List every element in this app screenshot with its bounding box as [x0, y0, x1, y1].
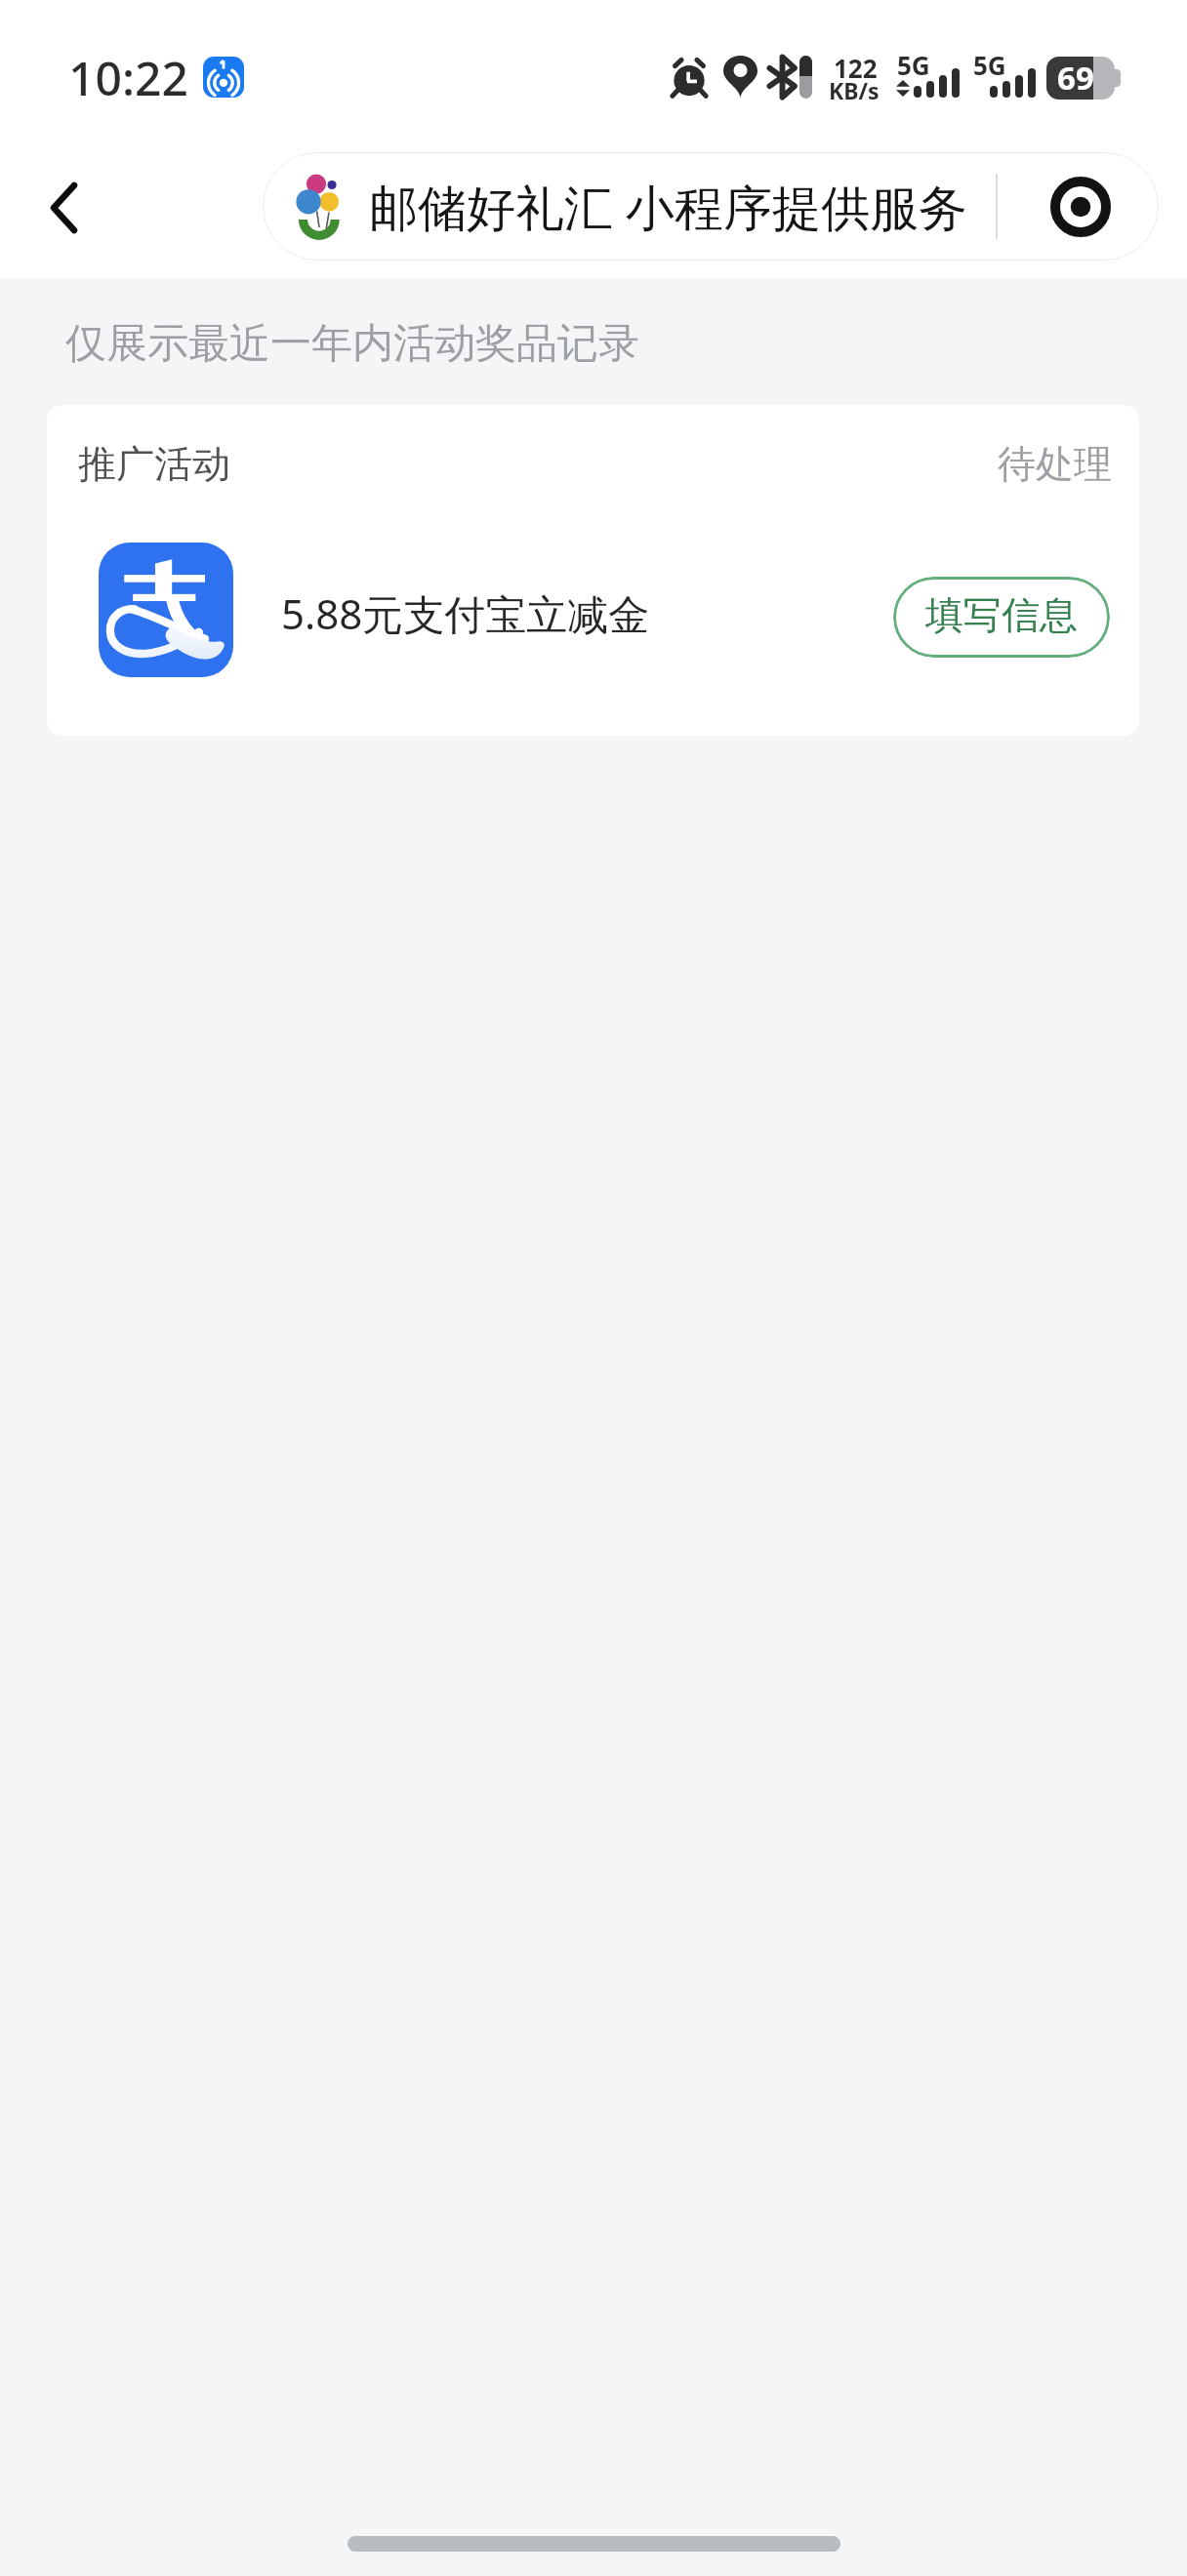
- staticText: 待处理: [998, 440, 1112, 488]
- staticText: 5G: [897, 48, 930, 82]
- button[interactable]: 填写信息: [893, 577, 1110, 658]
- staticText: 10:22: [68, 46, 188, 109]
- staticText: 5.88元支付宝立减金: [281, 585, 650, 641]
- staticText: 69: [1057, 57, 1094, 99]
- button[interactable]: Back: [9, 153, 118, 262]
- staticText: 5G: [973, 48, 1006, 82]
- staticText: 推广活动: [78, 440, 230, 488]
- staticText: 填写信息: [925, 591, 1078, 639]
- staticText: 仅展示最近一年内活动奖品记录: [65, 318, 639, 370]
- staticText: KB/s: [829, 75, 880, 105]
- button[interactable]: More: [1049, 176, 1112, 238]
- button[interactable]: 推广活动: [47, 405, 1139, 736]
- staticText: 122: [834, 51, 878, 85]
- staticText: 邮储好礼汇 小程序提供服务: [369, 174, 967, 240]
